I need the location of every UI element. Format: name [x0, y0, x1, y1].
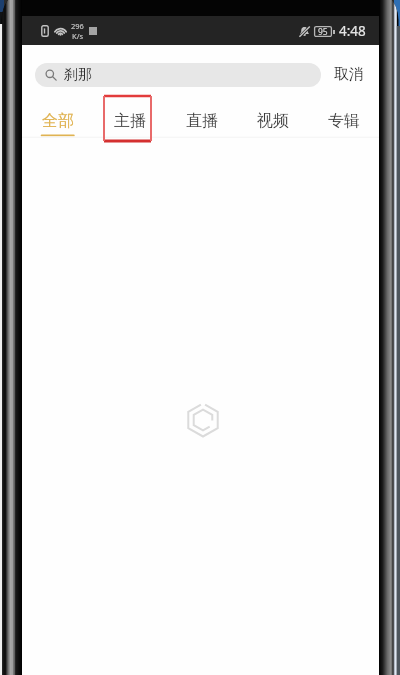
staticText: 刹那 — [64, 66, 92, 84]
button[interactable]: 刹那 — [35, 63, 321, 87]
staticText: 296 — [71, 21, 84, 31]
staticText: 取消 — [334, 65, 364, 84]
staticText: K/s — [72, 31, 84, 41]
other: Notifications muted — [299, 26, 310, 37]
button[interactable]: 专辑 — [308, 98, 379, 140]
staticText: 视频 — [257, 111, 289, 131]
staticText: 全部 — [42, 111, 74, 131]
button[interactable]: 主播 — [94, 98, 166, 140]
staticText: 4:48 — [339, 22, 366, 40]
button[interactable]: 视频 — [237, 98, 308, 140]
button[interactable]: 取消 — [334, 65, 364, 84]
button[interactable]: 全部 — [22, 98, 94, 140]
staticText: 95 — [318, 26, 328, 37]
staticText: 直播 — [186, 111, 218, 131]
button[interactable]: 直播 — [166, 98, 237, 140]
staticText: 专辑 — [328, 111, 360, 131]
staticText: 主播 — [114, 111, 146, 131]
